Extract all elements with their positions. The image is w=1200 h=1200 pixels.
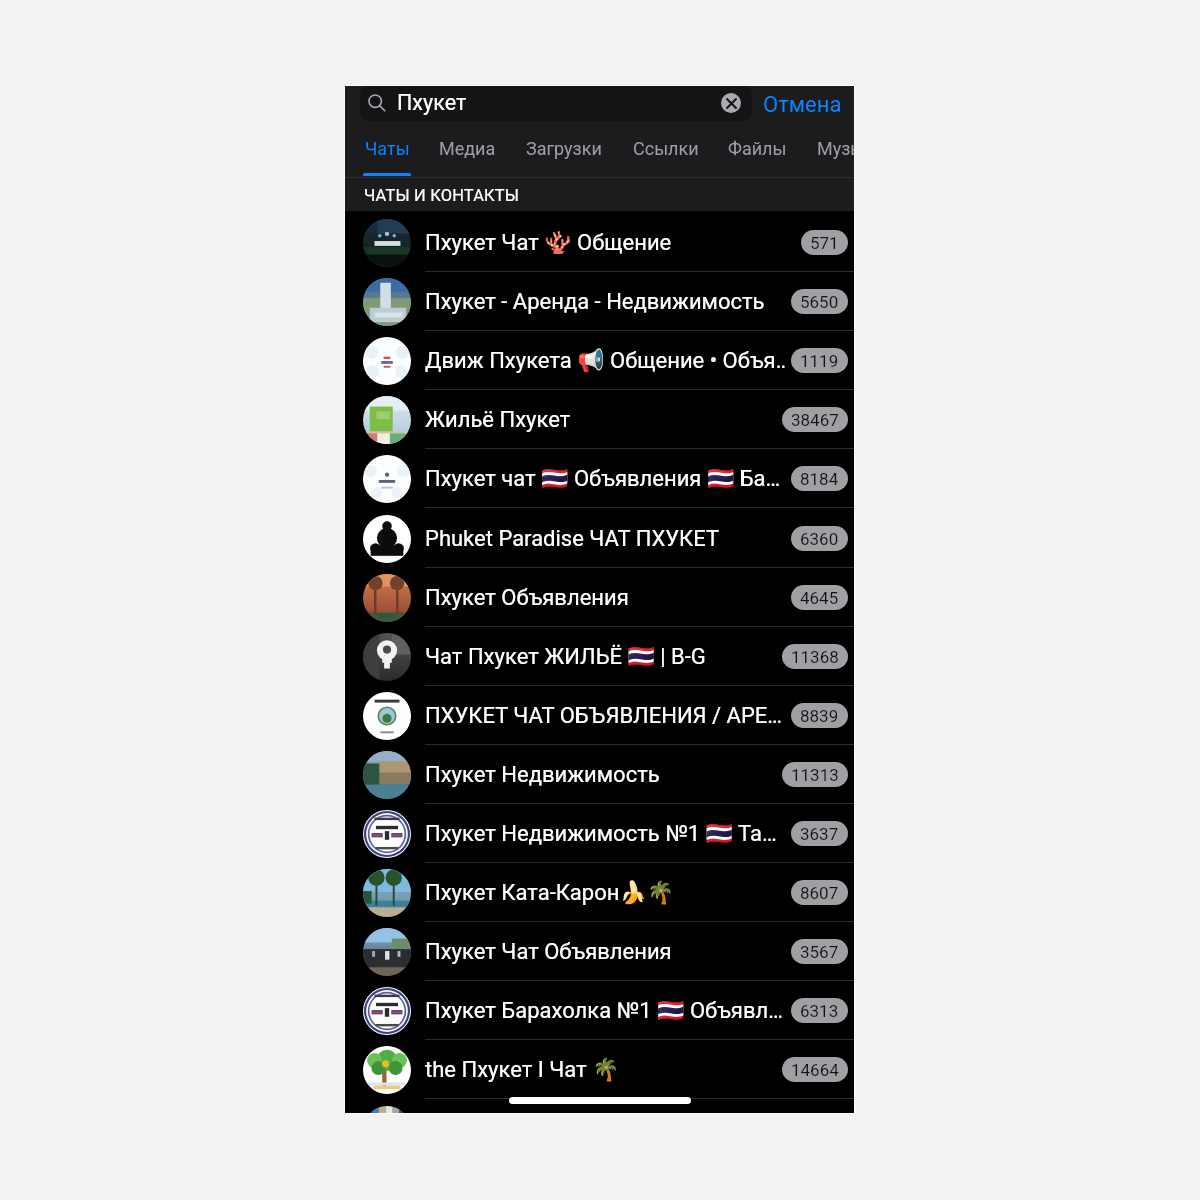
button[interactable]: Пхукет Чат 🪸 Общение: [345, 213, 854, 272]
staticText: Жильё Пхукет: [425, 407, 776, 433]
staticText: 38467: [791, 410, 839, 430]
button[interactable]: Пхукет Барахолка №1 🇹🇭 Объявл…: [345, 981, 854, 1040]
staticText: 8607: [800, 883, 839, 903]
staticText: 8839: [800, 706, 839, 726]
staticText: Пхукет Чат Объявления: [425, 939, 785, 965]
staticText: 11368: [791, 647, 839, 667]
staticText: Файлы: [728, 138, 787, 159]
staticText: 3567: [800, 942, 839, 962]
button[interactable]: Пхукет - Аренда - Недвижимость: [345, 272, 854, 331]
button[interactable]: Файлы: [722, 132, 793, 178]
staticText: Пхукет Недвижимость: [425, 762, 776, 788]
staticText: Пхукет Недвижимость №1 🇹🇭 Та…: [425, 821, 785, 847]
staticText: the Пхукет I Чат 🌴: [425, 1057, 776, 1083]
staticText: 4645: [800, 588, 839, 608]
button[interactable]: Музыка: [808, 132, 854, 178]
staticText: Пхукет Ката-Карон🍌🌴: [425, 880, 785, 906]
button[interactable]: Пхукет Объявления: [345, 568, 854, 627]
button[interactable]: Clear search: [721, 93, 741, 113]
button[interactable]: Жильё Пхукет: [345, 390, 854, 449]
staticText: 1119: [800, 351, 839, 371]
staticText: Музыка: [817, 138, 854, 159]
button[interactable]: Отмена: [763, 92, 842, 118]
button[interactable]: Пхукет Недвижимость №1 🇹🇭 Та…: [345, 804, 854, 863]
button[interactable]: the Пхукет I Чат 🌴: [345, 1040, 854, 1099]
button[interactable]: Движ Пхукета 📢 Общение • Объя…: [345, 331, 854, 390]
button[interactable]: Ссылки: [627, 132, 704, 178]
staticText: Медиа: [439, 138, 496, 159]
staticText: Пхукет: [397, 90, 467, 115]
staticText: Загрузки: [526, 138, 602, 159]
staticText: 6360: [800, 529, 839, 549]
staticText: Phuket Paradise ЧАТ ПХУКЕТ: [425, 526, 785, 552]
staticText: Чат Пхукет ЖИЛЬЁ 🇹🇭 | B-G: [425, 644, 776, 670]
button[interactable]: Пхукет Ката-Карон🍌🌴: [345, 863, 854, 922]
staticText: Отмена: [763, 92, 842, 118]
staticText: 8184: [800, 469, 839, 489]
staticText: ЧАТЫ И КОНТАКТЫ: [364, 186, 520, 205]
staticText: Чаты: [365, 138, 410, 159]
staticText: 6313: [800, 1001, 839, 1021]
staticText: 571: [810, 233, 839, 253]
staticText: Пхукет - Аренда - Недвижимость: [425, 289, 785, 315]
staticText: 11313: [791, 765, 839, 785]
staticText: 3637: [800, 824, 839, 844]
staticText: Движ Пхукета 📢 Общение • Объя…: [425, 348, 785, 374]
button[interactable]: Пхукет Недвижимость: [345, 745, 854, 804]
button[interactable]: Загрузки: [518, 132, 609, 178]
staticText: Пхукет Чат 🪸 Общение: [425, 230, 795, 256]
staticText: 14664: [791, 1060, 839, 1080]
staticText: Пхукет Объявления: [425, 585, 785, 611]
staticText: ПХУКЕТ ЧАТ ОБЪЯВЛЕНИЯ / АРЕ…: [425, 703, 785, 729]
staticText: Ссылки: [633, 138, 699, 159]
button[interactable]: Phuket Paradise ЧАТ ПХУКЕТ: [345, 509, 854, 568]
button[interactable]: Чаты: [357, 132, 417, 178]
button[interactable]: Пхукет: [360, 86, 752, 121]
button[interactable]: Медиа: [433, 132, 502, 178]
button[interactable]: Пхукет чат 🇹🇭 Объявления 🇹🇭 Ба…: [345, 449, 854, 508]
staticText: Пхукет Барахолка №1 🇹🇭 Объявл…: [425, 998, 785, 1024]
staticText: 5650: [800, 292, 839, 312]
staticText: Пхукет чат 🇹🇭 Объявления 🇹🇭 Ба…: [425, 466, 785, 492]
button[interactable]: ПХУКЕТ ЧАТ ОБЪЯВЛЕНИЯ / АРЕ…: [345, 686, 854, 745]
button[interactable]: Пхукет Чат Объявления: [345, 922, 854, 981]
button[interactable]: Чат Пхукет ЖИЛЬЁ 🇹🇭 | B-G: [345, 627, 854, 686]
